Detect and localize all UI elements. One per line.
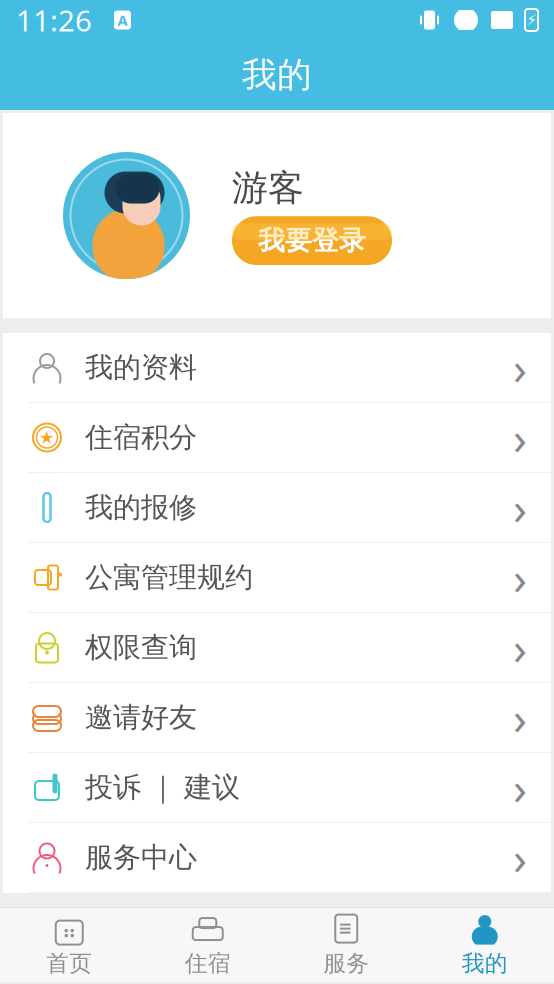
staticText: 我的资料 — [85, 350, 197, 385]
staticText: › — [513, 407, 527, 468]
staticText: 住宿 — [185, 950, 231, 977]
staticText: › — [513, 757, 527, 818]
button[interactable]: 投诉 ｜ 建议 — [3, 753, 551, 823]
button[interactable]: 邀请好友 — [3, 683, 551, 753]
button[interactable]: 我的 — [0, 40, 554, 110]
staticText: 权限查询 — [85, 630, 197, 665]
button[interactable]: 住宿 — [138, 908, 277, 982]
button[interactable]: 公寓管理规约 — [3, 543, 551, 613]
staticText: 投诉 ｜ 建议 — [85, 770, 240, 805]
staticText: 游客 — [232, 166, 304, 210]
button[interactable]: 我的报修 — [3, 473, 551, 543]
staticText: 服务 — [323, 950, 369, 977]
staticText: A — [117, 10, 127, 30]
button[interactable]: ★ — [3, 403, 551, 473]
staticText: 我的 — [242, 54, 312, 96]
staticText: 我要登录 — [258, 224, 366, 257]
staticText: 我的 — [462, 950, 508, 977]
button[interactable]: 我的资料 — [3, 333, 551, 403]
staticText: › — [513, 617, 527, 678]
button[interactable]: 首页 — [0, 908, 138, 982]
staticText: › — [513, 547, 527, 608]
staticText: › — [513, 687, 527, 748]
staticText: 11:26 — [16, 0, 92, 39]
button[interactable]: 游客 — [3, 113, 551, 318]
button[interactable]: 权限查询 — [3, 613, 551, 683]
staticText: 我的报修 — [85, 490, 197, 525]
staticText: 邀请好友 — [85, 700, 197, 735]
button[interactable]: 我的 — [415, 908, 554, 982]
button[interactable]: 服务 — [277, 908, 415, 982]
staticText: 首页 — [46, 950, 92, 977]
staticText: 服务中心 — [85, 840, 197, 875]
staticText: › — [513, 337, 527, 398]
staticText: 公寓管理规约 — [85, 560, 253, 595]
staticText: › — [513, 827, 527, 888]
staticText: 住宿积分 — [85, 420, 197, 455]
staticText: › — [513, 477, 527, 538]
button[interactable]: 服务中心 — [3, 823, 551, 893]
staticText: ★ — [39, 428, 55, 447]
staticText: ⚡︎ — [526, 12, 536, 28]
